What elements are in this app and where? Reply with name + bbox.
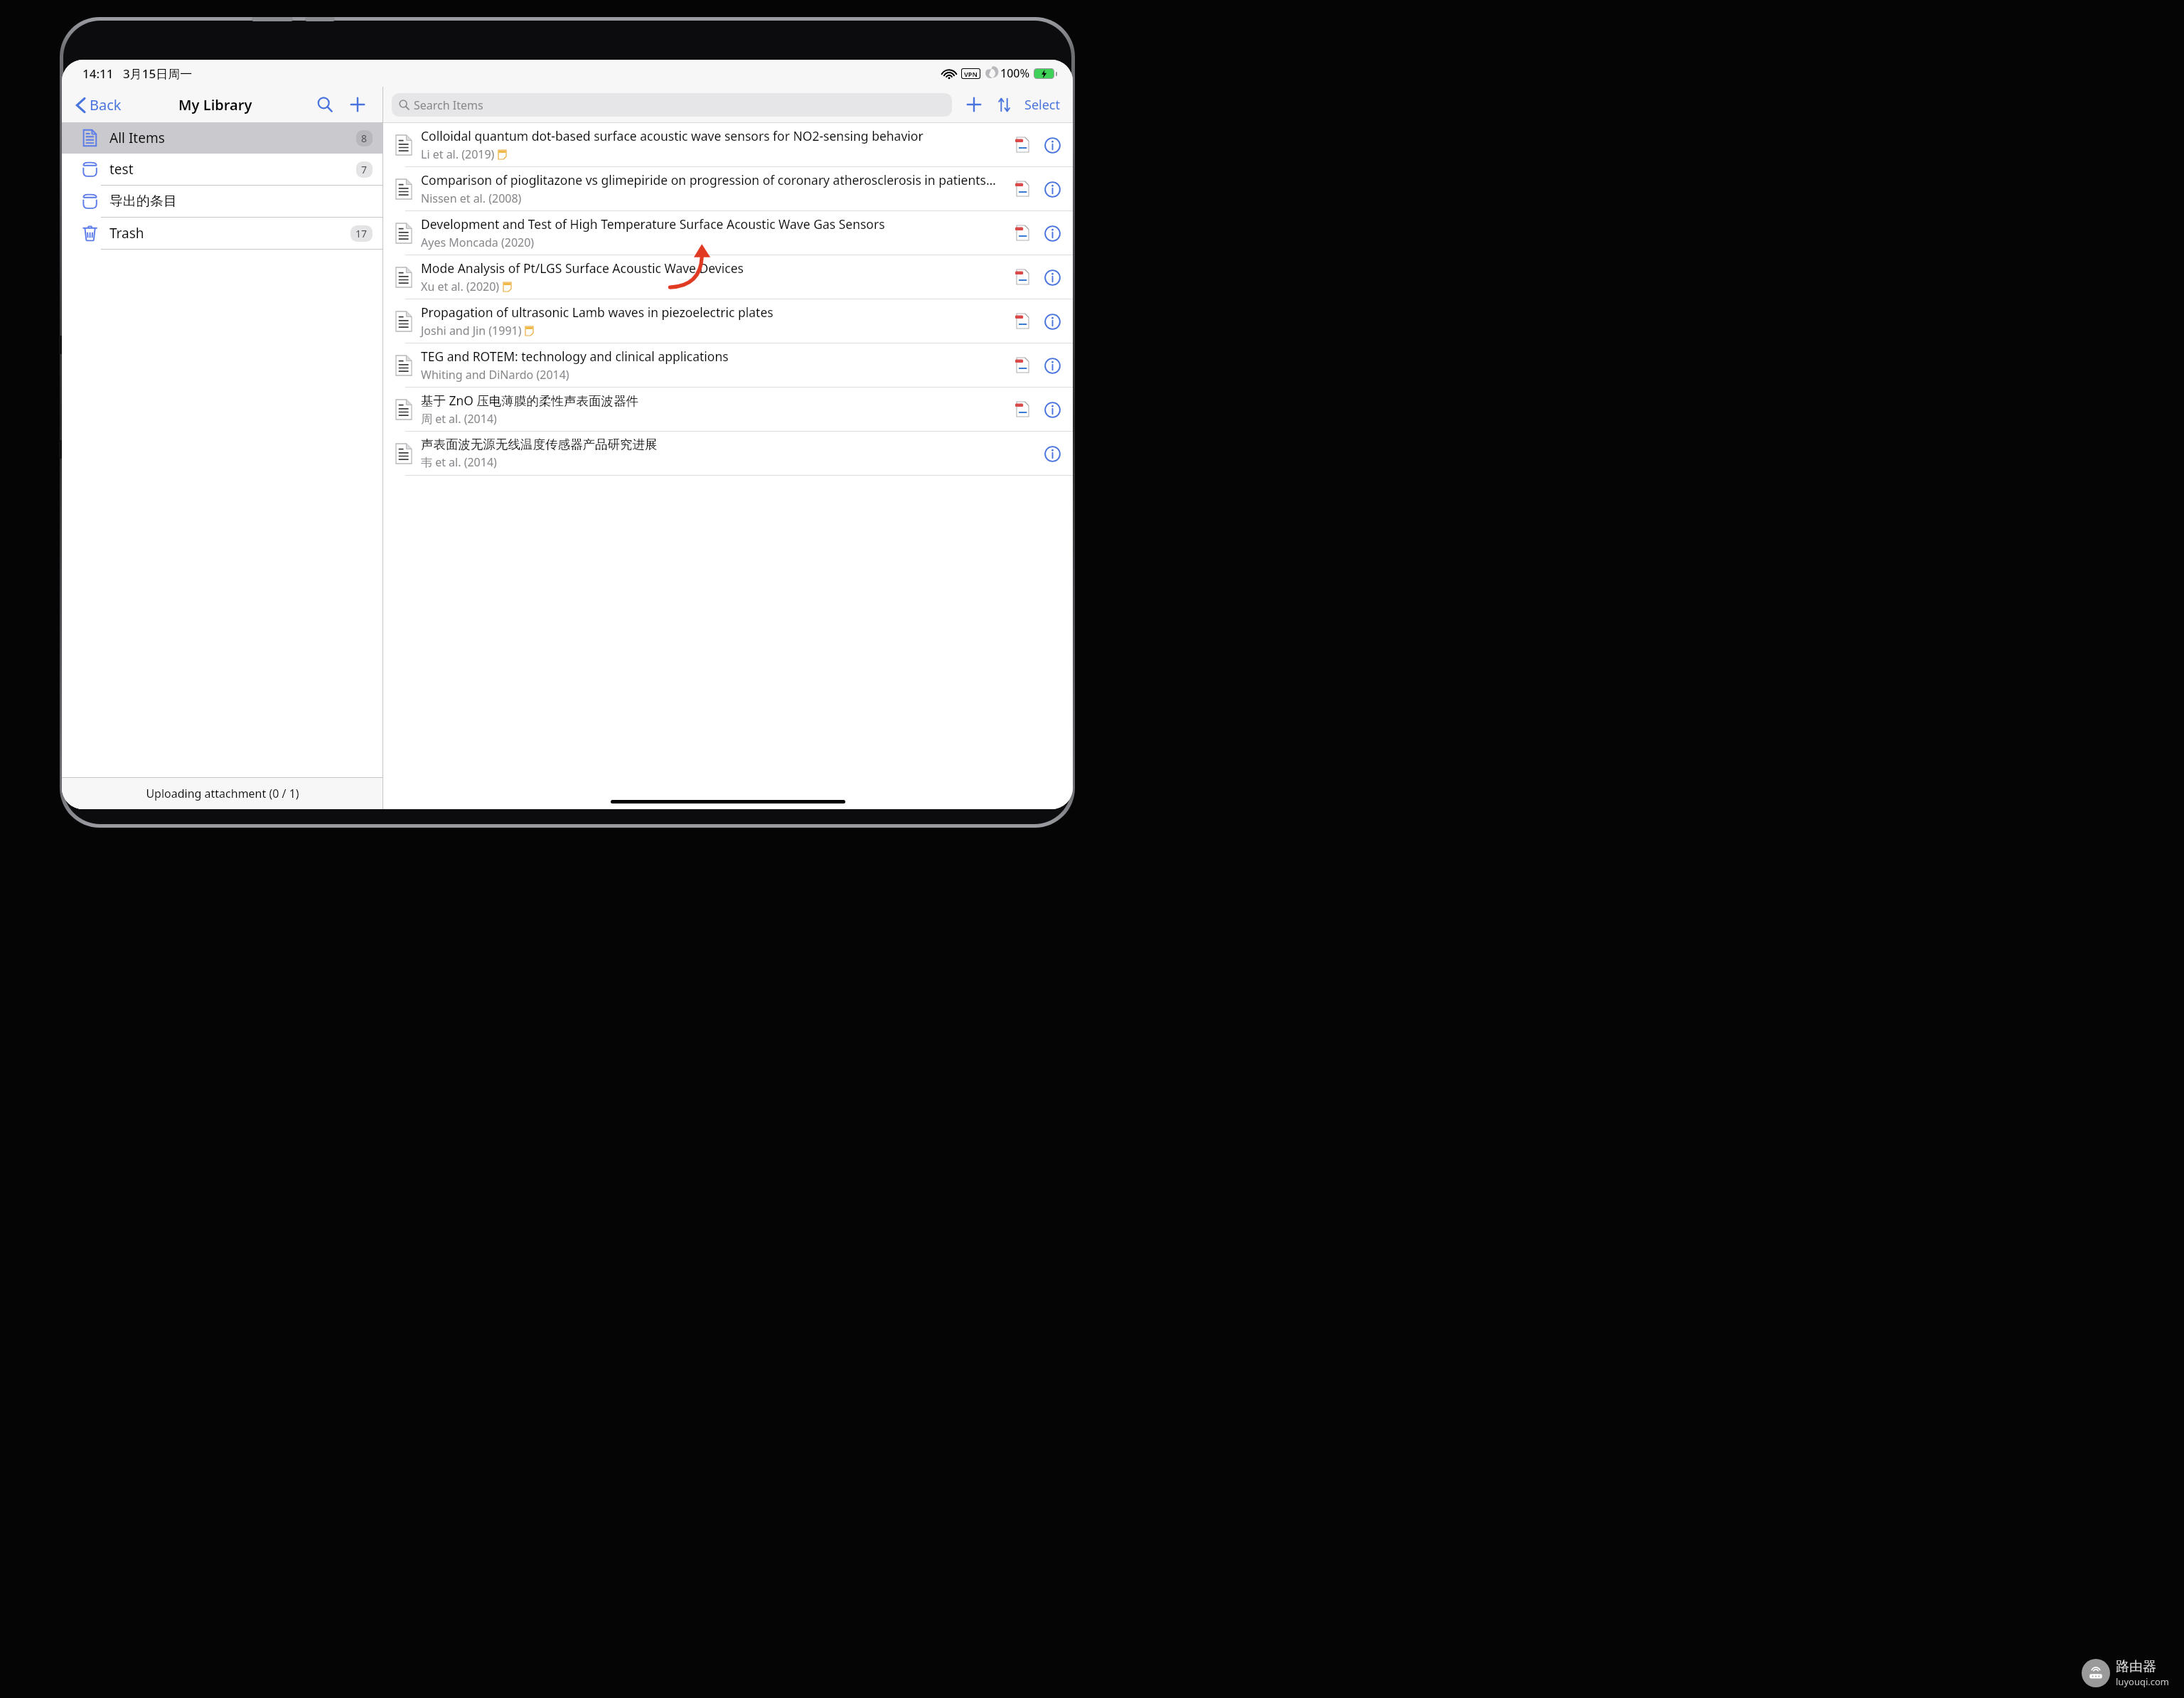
staticText: 3月15日周一 [123,65,193,82]
staticText: My Library [178,95,252,114]
staticText: 17 [355,227,368,240]
button[interactable]: Item info [1042,443,1063,464]
button[interactable]: Search Items [392,93,952,117]
button[interactable]: Item info [1042,223,1063,244]
button[interactable]: Item info [1042,267,1063,288]
staticText: Search Items [414,97,483,113]
button[interactable]: Item info [1042,311,1063,332]
button[interactable]: Development and Test of High Temperature… [383,211,1073,255]
staticText: Xu et al. (2020) [421,279,500,294]
button[interactable]: TEG and ROTEM: technology and clinical a… [383,343,1073,388]
staticText: Propagation of ultrasonic Lamb waves in … [421,304,773,321]
staticText: 14:11 [82,65,114,82]
staticText: Ayes Moncada (2020) [421,235,535,250]
button[interactable]: 导出的条目 [62,186,382,218]
staticText: Back [90,95,122,114]
button[interactable]: Comparison of pioglitazone vs glimepirid… [383,167,1073,211]
staticText: Trash [109,224,350,242]
staticText: 周 et al. (2014) [421,411,497,427]
staticText: 100% [1000,65,1030,81]
staticText: All Items [109,129,356,147]
button[interactable]: Item info [1042,134,1063,156]
staticText: Colloidal quantum dot-based surface acou… [421,127,924,144]
staticText: 韦 et al. (2014) [421,454,497,470]
button[interactable]: Add collection [344,91,371,118]
staticText: Mode Analysis of Pt/LGS Surface Acoustic… [421,260,744,277]
button[interactable]: Back [73,92,124,117]
staticText: Development and Test of High Temperature… [421,215,885,233]
staticText: Comparison of pioglitazone vs glimepirid… [421,171,996,188]
button[interactable]: Sort [992,92,1016,117]
button[interactable]: All Items [62,122,382,154]
staticText: Uploading attachment (0 / 1) [146,786,299,801]
button[interactable]: Item info [1042,178,1063,200]
button[interactable]: Item info [1042,355,1063,376]
staticText: 8 [361,132,368,145]
staticText: TEG and ROTEM: technology and clinical a… [421,348,729,365]
staticText: VPN [964,70,978,78]
button[interactable]: 声表面波无源无线温度传感器产品研究进展 [383,432,1073,476]
staticText: Select [1024,96,1060,114]
button[interactable]: Propagation of ultrasonic Lamb waves in … [383,299,1073,343]
staticText: Nissen et al. (2008) [421,191,522,206]
staticText: Joshi and Jin (1991) [421,323,522,338]
staticText: 声表面波无源无线温度传感器产品研究进展 [421,437,658,452]
staticText: 导出的条目 [109,193,373,210]
button[interactable]: Trash [62,218,382,250]
staticText: 基于 ZnO 压电薄膜的柔性声表面波器件 [421,392,639,409]
button[interactable]: Mode Analysis of Pt/LGS Surface Acoustic… [383,255,1073,299]
button[interactable]: 基于 ZnO 压电薄膜的柔性声表面波器件 [383,388,1073,432]
staticText: 路由器 [2116,1658,2156,1675]
button[interactable]: test [62,154,382,186]
staticText: Whiting and DiNardo (2014) [421,367,569,383]
button[interactable]: Add item [962,92,986,117]
button[interactable]: Select [1022,93,1063,117]
staticText: luyouqi.com [2116,1675,2170,1688]
button[interactable]: Item info [1042,399,1063,420]
staticText: Li et al. (2019) [421,146,495,162]
staticText: 7 [361,163,368,176]
staticText: test [109,160,356,178]
button[interactable]: Search [311,91,338,118]
button[interactable]: Colloidal quantum dot-based surface acou… [383,123,1073,167]
